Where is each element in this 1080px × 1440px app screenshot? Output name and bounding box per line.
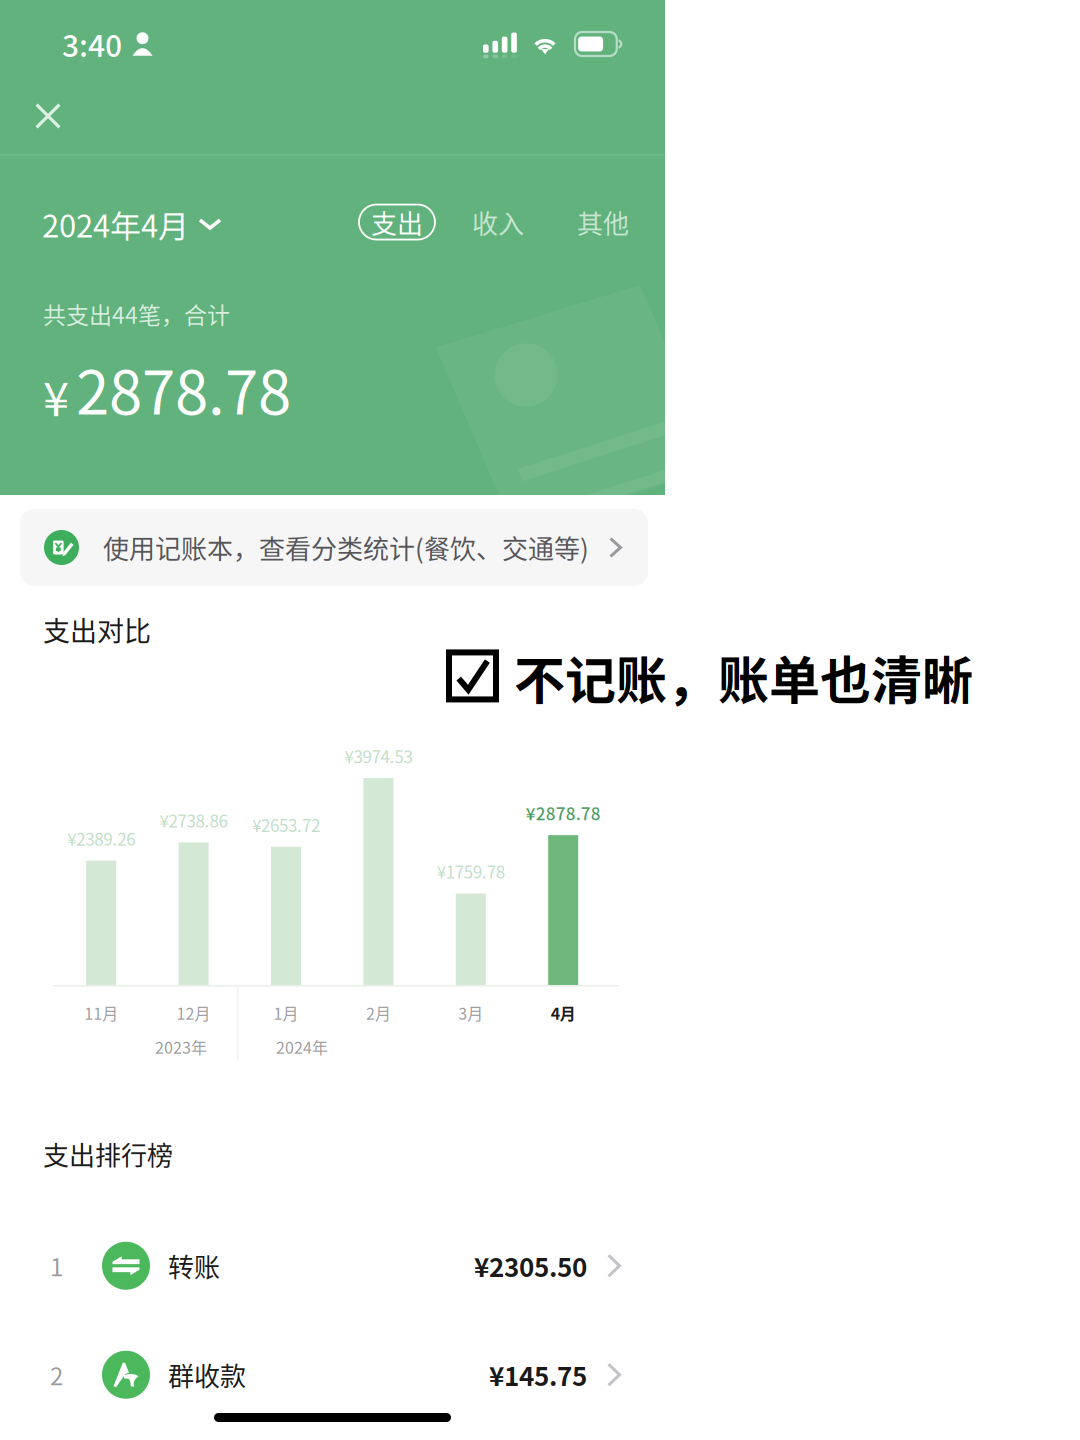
staticText: ¥2389.26 [67, 826, 135, 851]
staticText: ¥1759.78 [437, 859, 505, 883]
staticText: ¥2878.78 [526, 800, 601, 825]
staticText: ¥ [43, 362, 69, 430]
staticText: 2024年 [276, 1035, 328, 1058]
staticText: 使用记账本，查看分类统计(餐饮、交通等) [103, 529, 589, 566]
staticText: 11月 [84, 1001, 118, 1024]
button[interactable]: 收入 [468, 205, 528, 240]
staticText: 2024年4月 [42, 202, 189, 246]
staticText: 转账 [168, 1247, 220, 1284]
staticText: 不记账，账单也清晰 [514, 640, 973, 714]
staticText: 支出对比 [43, 610, 151, 649]
staticText: 群收款 [168, 1356, 246, 1393]
staticText: 2 [50, 1357, 63, 1392]
staticText: 3:40 [62, 22, 122, 66]
staticText: ¥2305.50 [474, 1247, 587, 1284]
button[interactable]: 支出 [359, 205, 435, 240]
staticText: 其他 [577, 203, 629, 241]
staticText: 2023年 [155, 1035, 207, 1058]
staticText: 共支出44笔，合计 [43, 297, 230, 330]
button[interactable]: 其他 [573, 205, 633, 240]
staticText: 1 [50, 1248, 63, 1283]
staticText: ¥3974.53 [344, 743, 412, 768]
staticText: ¥2738.86 [160, 808, 228, 832]
button[interactable]: 2 [0, 1348, 665, 1402]
staticText: ¥145.75 [489, 1356, 587, 1393]
button[interactable]: 关闭 [20, 88, 76, 144]
staticText: ¥2653.72 [252, 812, 320, 837]
staticText: 1月 [273, 1001, 298, 1024]
button[interactable]: 使用记账本，查看分类统计(餐饮、交通等) [20, 509, 648, 586]
staticText: 2878.78 [76, 345, 291, 432]
staticText: 收入 [472, 203, 524, 241]
staticText: 2月 [366, 1001, 391, 1024]
staticText: 12月 [177, 1001, 211, 1024]
button[interactable]: 2024年4月 [42, 189, 222, 259]
button[interactable]: 1 [0, 1239, 665, 1293]
staticText: 支出 [371, 203, 423, 241]
staticText: 4月 [551, 1001, 576, 1024]
staticText: 3月 [458, 1001, 483, 1024]
staticText: 支出排行榜 [43, 1135, 173, 1173]
